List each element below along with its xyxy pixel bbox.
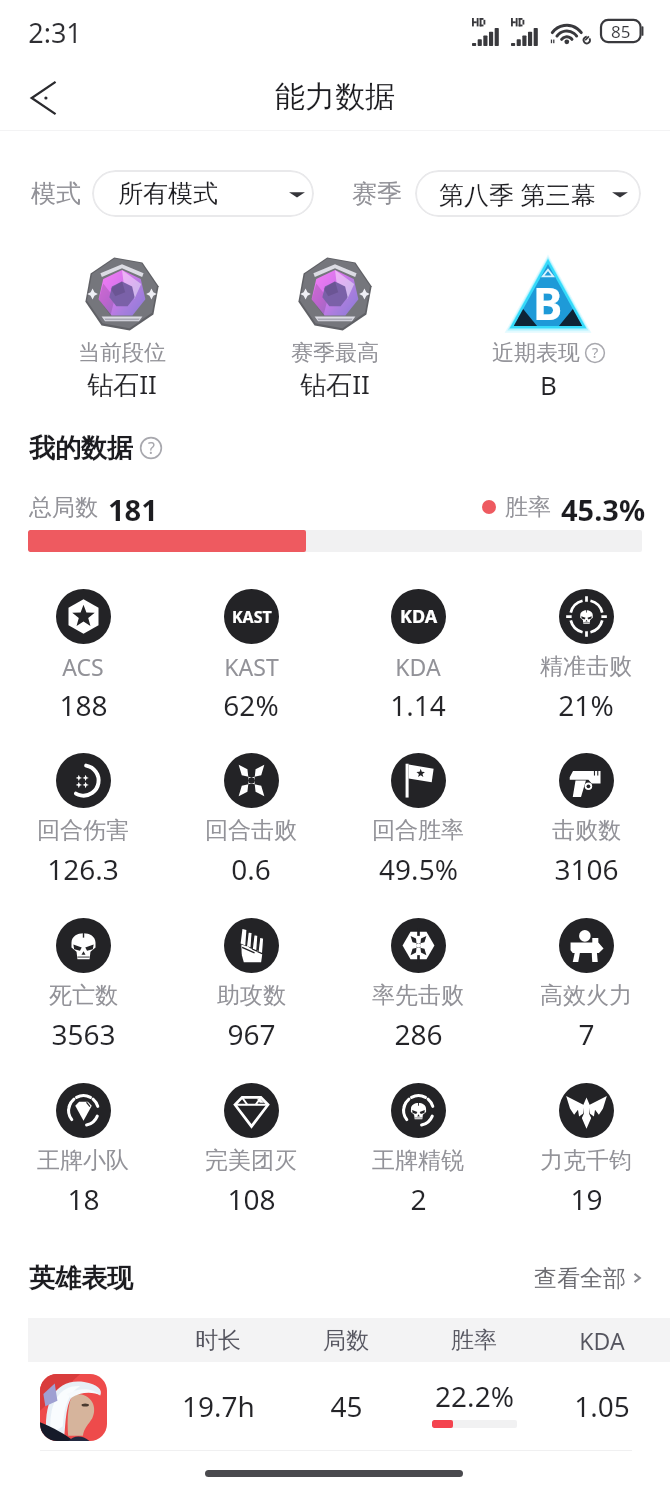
staticText: 当前段位 (78, 339, 166, 367)
staticText: 21% (558, 686, 614, 724)
button[interactable] (295, 254, 375, 334)
staticText: 0.6 (231, 850, 271, 888)
button[interactable] (540, 745, 632, 875)
button[interactable] (372, 745, 464, 875)
staticText: 王牌精锐 (372, 1146, 464, 1175)
staticText: 时长 (195, 1326, 241, 1355)
button[interactable] (205, 745, 297, 875)
button[interactable]: Back (12, 67, 74, 129)
staticText: 188 (59, 686, 108, 724)
staticText: 第八季 第三幕 (439, 177, 596, 211)
staticText: 高效火力 (540, 981, 632, 1010)
button[interactable]: B (508, 254, 588, 334)
staticText: 局数 (323, 1326, 369, 1355)
staticText: 1.14 (390, 686, 446, 724)
button[interactable] (205, 910, 297, 1040)
staticText: 967 (227, 1015, 276, 1053)
staticText: 率先击败 (372, 981, 464, 1010)
staticText: 85 (611, 20, 631, 43)
button[interactable]: 我的数据 (29, 432, 162, 464)
staticText: 我的数据 (29, 432, 133, 464)
staticText: 王牌小队 (37, 1146, 129, 1175)
button[interactable] (372, 1075, 464, 1205)
staticText: KAST (224, 651, 279, 682)
staticText: 钻石II (300, 366, 370, 402)
button[interactable] (37, 1075, 129, 1205)
button[interactable]: KAST (205, 581, 297, 711)
staticText: 45.3% (561, 490, 646, 524)
button[interactable] (37, 910, 129, 1040)
staticText: 所有模式 (118, 178, 218, 209)
button[interactable] (37, 745, 129, 875)
button[interactable]: 查看全部 (500, 1262, 646, 1294)
button[interactable] (37, 581, 129, 711)
staticText: KDA (579, 1325, 625, 1356)
staticText: KDA (400, 604, 438, 629)
staticText: 19.7h (182, 1387, 255, 1425)
staticText: 回合击败 (205, 816, 297, 845)
staticText: 回合伤害 (37, 816, 129, 845)
staticText: 精准击败 (540, 652, 632, 681)
button[interactable]: 所有模式 (92, 170, 314, 217)
staticText: 查看全部 (534, 1264, 626, 1293)
staticText: 19 (570, 1180, 603, 1218)
staticText: 7 (578, 1015, 595, 1053)
button[interactable]: KDA (372, 581, 464, 711)
button[interactable]: 英雄表现 (29, 1261, 133, 1295)
button[interactable] (540, 910, 632, 1040)
staticText: 能力数据 (275, 78, 395, 116)
staticText: 62% (223, 686, 279, 724)
staticText: 回合胜率 (372, 816, 464, 845)
staticText: ACS (62, 651, 104, 682)
staticText: 1.05 (574, 1387, 630, 1425)
button[interactable] (540, 1075, 632, 1205)
staticText: 49.5% (379, 850, 458, 888)
staticText: 赛季 (352, 178, 402, 209)
staticText: 近期表现 (492, 339, 580, 367)
staticText: 2:31 (28, 14, 82, 51)
button[interactable] (205, 1075, 297, 1205)
staticText: 钻石II (87, 366, 157, 402)
staticText: B (533, 273, 563, 333)
staticText: 力克千钧 (540, 1146, 632, 1175)
staticText: 死亡数 (49, 981, 118, 1010)
staticText: 赛季最高 (291, 339, 379, 367)
button[interactable] (82, 254, 162, 334)
staticText: ? (148, 437, 155, 459)
staticText: B (540, 367, 557, 402)
staticText: 126.3 (47, 850, 119, 888)
staticText: 18 (67, 1180, 100, 1218)
staticText: 胜率 (505, 493, 551, 522)
staticText: 286 (394, 1015, 443, 1053)
staticText: 总局数 (29, 493, 98, 522)
staticText: 助攻数 (217, 981, 286, 1010)
staticText: 22.2% (435, 1377, 514, 1415)
button[interactable] (540, 581, 632, 711)
staticText: 胜率 (451, 1326, 497, 1355)
button[interactable] (372, 910, 464, 1040)
staticText: 英雄表现 (29, 1262, 133, 1295)
staticText: 181 (108, 490, 158, 524)
staticText: 3106 (554, 850, 619, 888)
staticText: 2 (410, 1180, 427, 1218)
staticText: ? (592, 343, 599, 363)
staticText: KAST (232, 606, 272, 628)
button[interactable]: 第八季 第三幕 (415, 170, 641, 217)
button[interactable] (0, 1362, 670, 1450)
staticText: 击败数 (552, 816, 621, 845)
staticText: 45 (330, 1387, 363, 1425)
staticText: 模式 (31, 178, 81, 209)
staticText: KDA (395, 651, 441, 682)
staticText: 3563 (51, 1015, 116, 1053)
staticText: 108 (227, 1180, 276, 1218)
staticText: 完美团灭 (205, 1146, 297, 1175)
